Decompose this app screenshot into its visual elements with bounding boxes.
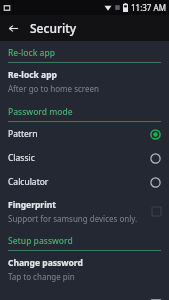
- button[interactable]: Pattern: [0, 122, 169, 146]
- staticText: Pattern: [8, 128, 150, 140]
- staticText: Password mode: [8, 106, 73, 118]
- staticText: Change password: [8, 257, 83, 269]
- staticText: Security: [30, 20, 77, 36]
- staticText: Calculator: [8, 176, 150, 188]
- staticText: Support for samsung devices only.: [8, 213, 138, 224]
- staticText: Tap to change pin: [8, 271, 75, 282]
- button[interactable]: Back: [0, 15, 26, 41]
- button[interactable]: Classic: [0, 146, 169, 170]
- button[interactable]: Change password: [0, 251, 169, 288]
- staticText: Re-lock app: [8, 69, 57, 81]
- staticText: Fingerprint: [8, 199, 56, 211]
- staticText: Re-lock app: [8, 47, 56, 59]
- button[interactable]: Re-lock app: [0, 63, 169, 100]
- button[interactable]: Fingerprint: [0, 194, 169, 229]
- staticText: After go to home screen: [8, 83, 99, 94]
- staticText: 11:37 AM: [131, 2, 166, 13]
- staticText: Classic: [8, 152, 150, 164]
- button[interactable]: Calculator: [0, 170, 169, 194]
- button[interactable]: Password level: [0, 288, 169, 300]
- staticText: Setup password: [8, 235, 73, 247]
